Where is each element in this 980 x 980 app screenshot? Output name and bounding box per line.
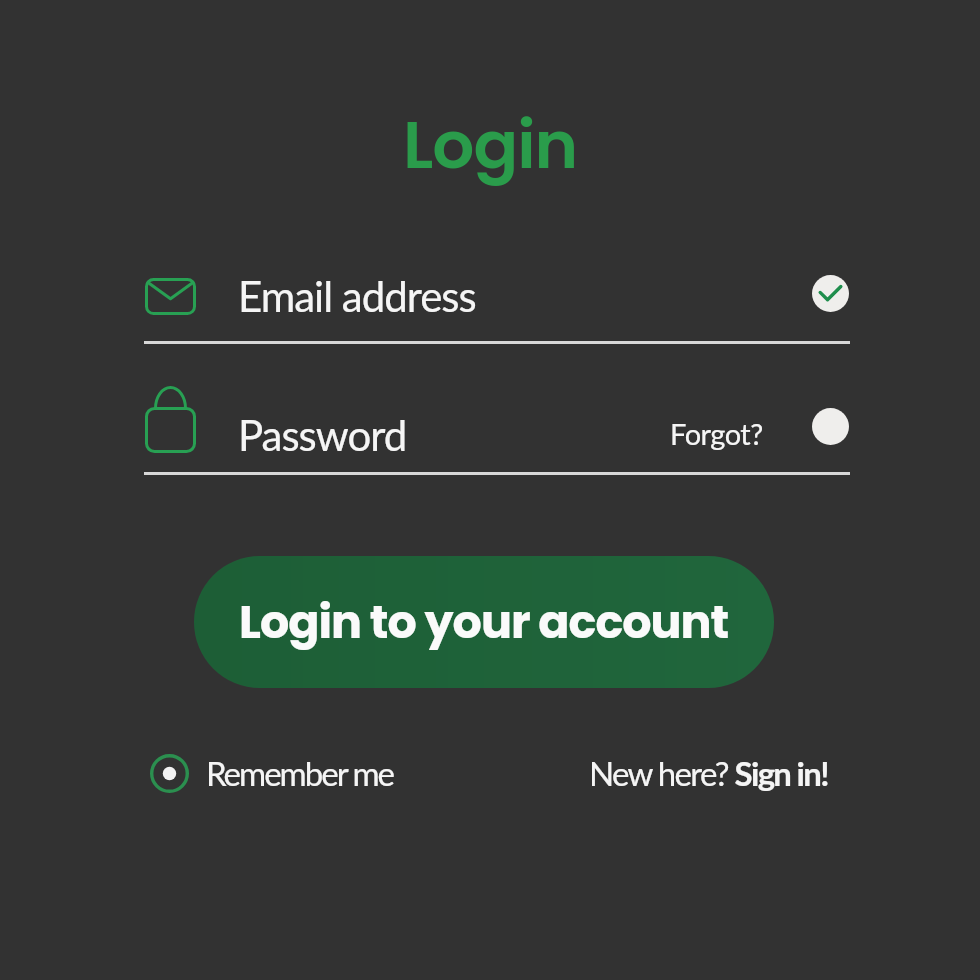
button[interactable]: Password (144, 380, 850, 475)
staticText: Email address (238, 271, 476, 321)
button[interactable] (812, 275, 849, 312)
staticText: Login to your account (239, 590, 729, 654)
button[interactable] (812, 408, 849, 445)
button[interactable]: Forgot? (670, 416, 763, 451)
staticText: Login (403, 99, 578, 191)
button[interactable]: New here? Sign in! (589, 753, 828, 793)
button[interactable]: Login to your account (194, 556, 774, 688)
button[interactable]: Email address (144, 263, 850, 344)
button[interactable]: Remember me (206, 753, 393, 793)
button[interactable] (150, 754, 189, 793)
staticText: Password (238, 410, 407, 460)
